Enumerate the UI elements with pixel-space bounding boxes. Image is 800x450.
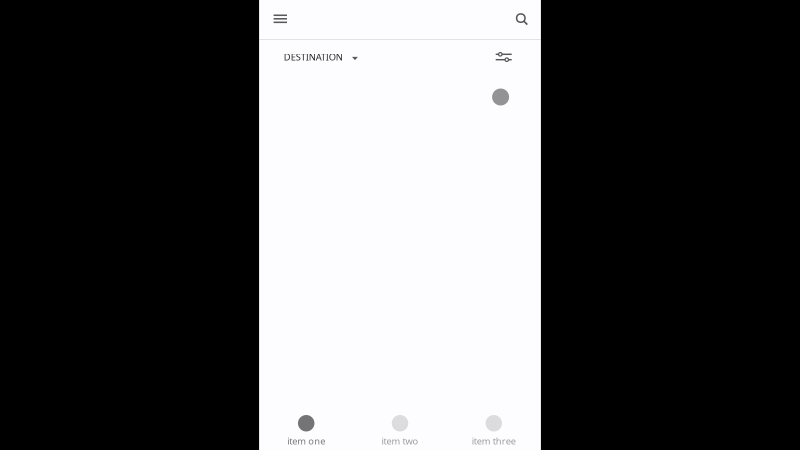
button[interactable]: DESTINATION	[284, 44, 358, 70]
staticText: item three	[472, 435, 516, 447]
button[interactable]: item one	[259, 409, 353, 450]
staticText: item one	[287, 435, 325, 447]
button[interactable]: Filters	[492, 45, 516, 69]
button[interactable]: item three	[447, 409, 541, 450]
staticText: item two	[381, 435, 418, 447]
button[interactable]: item two	[353, 409, 447, 450]
staticText: DESTINATION	[284, 51, 343, 63]
button[interactable]: Menu	[265, 4, 295, 34]
button[interactable]: Add destination	[492, 88, 509, 105]
button[interactable]: Search	[508, 5, 536, 33]
